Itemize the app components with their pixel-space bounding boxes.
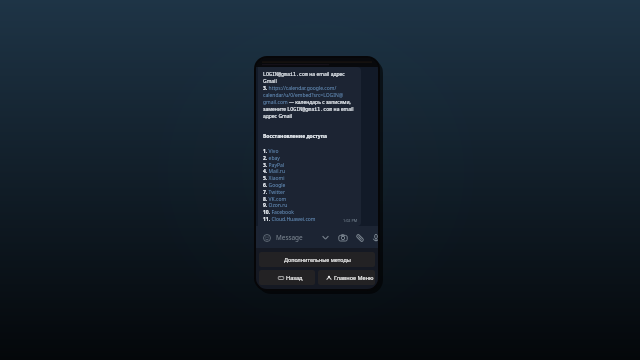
staticText: Message xyxy=(276,233,303,242)
staticText: 5. Xiaomi xyxy=(263,175,285,182)
staticText: Главное Меню xyxy=(334,274,374,282)
staticText: Назад xyxy=(286,274,303,282)
button[interactable]: Voice message xyxy=(370,232,378,243)
staticText: 4. Mail.ru xyxy=(263,168,285,175)
button[interactable]: Expand xyxy=(320,232,331,243)
staticText: 8. VK.com xyxy=(263,196,287,203)
button[interactable]: Attach file xyxy=(354,232,365,243)
button[interactable]: Emoji xyxy=(261,232,272,243)
staticText: 11. Cloud.Huawei.com xyxy=(263,216,316,223)
staticText: 2. ebay xyxy=(263,155,280,162)
staticText: 3. PayPal xyxy=(263,162,285,169)
button[interactable]: Camera xyxy=(337,232,348,243)
button[interactable]: Назад xyxy=(259,270,315,285)
button[interactable]: Главное Меню xyxy=(318,270,375,285)
staticText: 1. Vivo xyxy=(263,148,279,155)
staticText: 10. Facebook xyxy=(263,209,294,216)
staticText: Восстановление доступа xyxy=(263,133,327,140)
staticText: LOGIN@gmail.com на email адрес Gmail 3. … xyxy=(263,71,354,120)
staticText: 6. Google xyxy=(263,182,286,189)
staticText: Дополнительные методы xyxy=(284,256,351,263)
staticText: 1:02 PM xyxy=(343,218,358,223)
staticText: 9. Ozon.ru xyxy=(263,202,288,209)
button[interactable]: Дополнительные методы xyxy=(259,252,375,267)
staticText: 7. Twitter xyxy=(263,189,285,196)
